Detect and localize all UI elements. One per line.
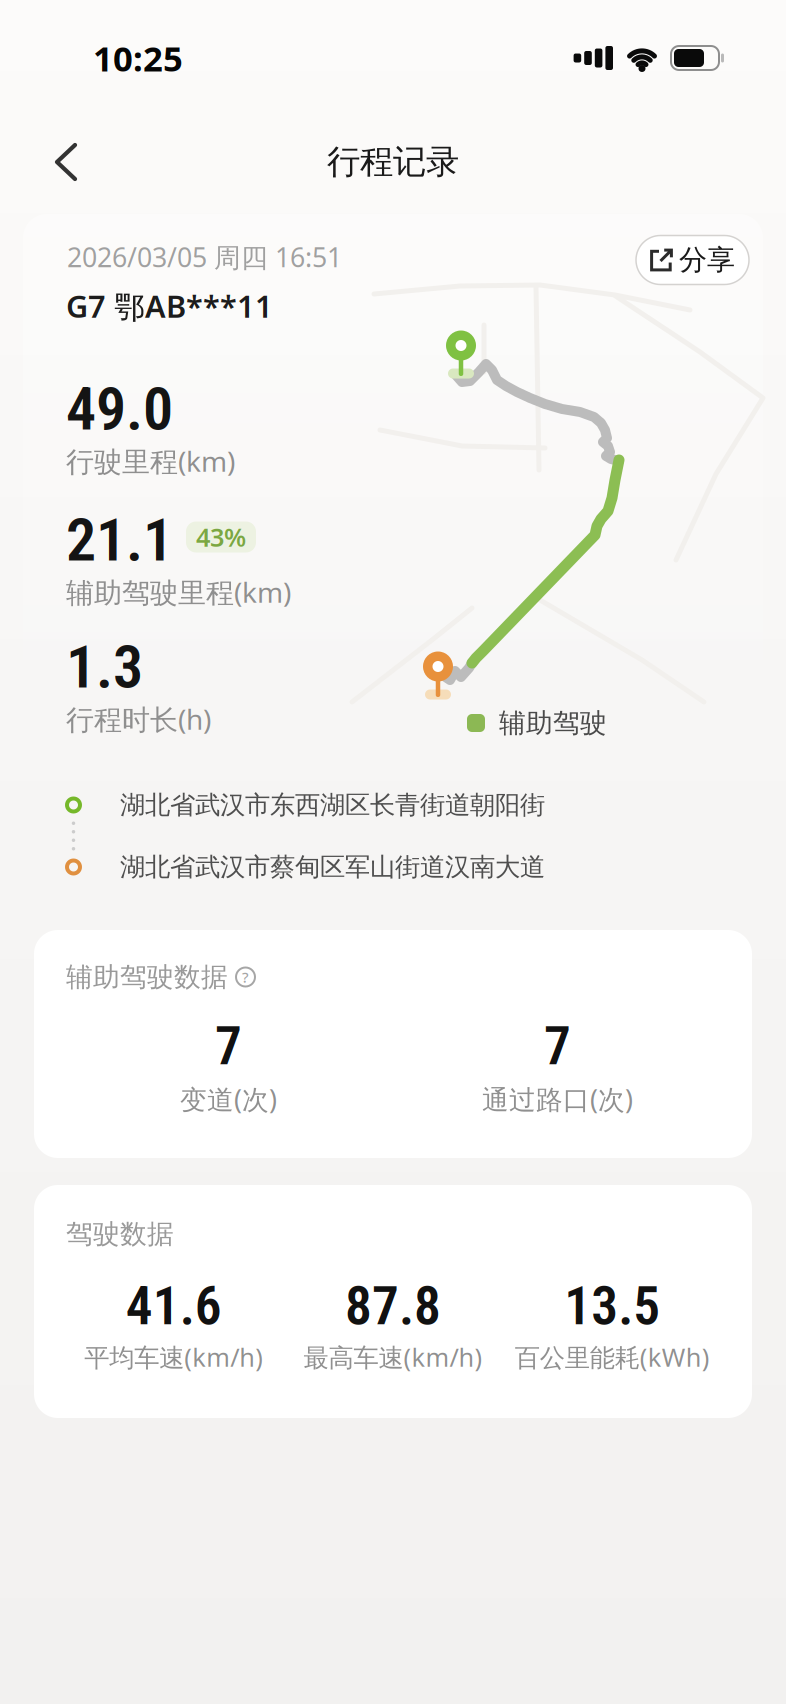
- staticText: 1.3: [66, 632, 143, 702]
- staticText: 最高车速(km/h): [303, 1340, 482, 1374]
- staticText: 湖北省武汉市东西湖区长青街道朝阳街: [120, 789, 545, 820]
- staticText: 辅助驾驶: [499, 707, 607, 739]
- staticText: 7: [215, 1015, 242, 1077]
- staticText: 湖北省武汉市蔡甸区军山街道汉南大道: [120, 851, 545, 882]
- staticText: 百公里能耗(kWh): [515, 1340, 710, 1374]
- staticText: G7 鄂AB***11: [66, 286, 273, 326]
- staticText: 行驶里程(km): [66, 442, 235, 480]
- staticText: 2026/03/05 周四 16:51: [67, 239, 342, 275]
- staticText: 驾驶数据: [66, 1218, 174, 1250]
- staticText: 43%: [196, 520, 246, 554]
- button[interactable]: 帮助: [236, 967, 255, 987]
- staticText: 41.6: [126, 1275, 222, 1337]
- button[interactable]: 分享: [636, 235, 749, 284]
- staticText: 平均车速(km/h): [84, 1340, 263, 1374]
- staticText: 变道(次): [180, 1081, 277, 1117]
- staticText: 7: [544, 1015, 571, 1077]
- staticText: ?: [242, 967, 249, 987]
- staticText: 行程记录: [327, 141, 459, 182]
- button[interactable]: Back: [0, 126, 79, 198]
- staticText: 辅助驾驶数据: [66, 961, 228, 993]
- staticText: 通过路口(次): [482, 1081, 633, 1117]
- staticText: 行程时长(h): [66, 700, 211, 738]
- staticText: 21.1: [66, 505, 173, 575]
- staticText: 13.5: [564, 1275, 660, 1337]
- staticText: 87.8: [345, 1275, 441, 1337]
- staticText: 49.0: [66, 374, 173, 444]
- staticText: 10:25: [93, 35, 183, 81]
- staticText: 分享: [679, 243, 735, 277]
- staticText: 辅助驾驶里程(km): [66, 573, 291, 611]
